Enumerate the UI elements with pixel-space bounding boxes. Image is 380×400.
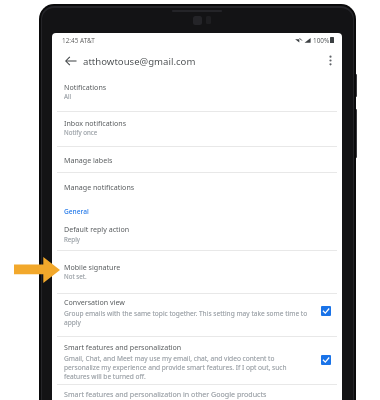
button[interactable] — [52, 327, 342, 369]
button[interactable] — [52, 180, 342, 205]
staticText: atthowtouse@gmail.com — [83, 55, 196, 68]
staticText: Smart features and personalization — [64, 342, 330, 352]
staticText: Manage labels — [64, 155, 330, 165]
staticText: Notifications — [64, 82, 330, 92]
button[interactable] — [52, 206, 342, 232]
button[interactable] — [52, 253, 342, 283]
staticText: Conversation view — [64, 297, 330, 307]
staticText: Mobile signature — [64, 262, 330, 272]
button[interactable] — [52, 284, 342, 326]
staticText: All — [64, 92, 330, 100]
button[interactable]: atthowtouse@gmail.com — [83, 50, 263, 72]
button[interactable]: Back — [62, 52, 80, 70]
staticText: Manage notifications — [64, 182, 330, 192]
staticText: 12:45 AT&T — [62, 36, 95, 45]
staticText: Default reply action — [64, 224, 330, 234]
staticText: Notify once — [64, 128, 330, 136]
staticText: Smart features and personalization in ot… — [64, 389, 330, 399]
button[interactable] — [52, 145, 342, 179]
staticText: Not set. — [64, 272, 330, 280]
staticText: Inbox notifications — [64, 118, 330, 128]
staticText: 100% — [313, 36, 330, 45]
staticText: Reply — [64, 235, 330, 243]
button[interactable] — [52, 370, 342, 400]
staticText: Gmail, Chat, and Meet may use my email, … — [64, 354, 324, 381]
button[interactable]: More options — [321, 51, 339, 69]
button[interactable]: Conversation view — [321, 306, 331, 316]
button[interactable]: Smart features and personalization — [321, 355, 331, 365]
staticText: General — [64, 207, 330, 216]
button[interactable] — [52, 111, 342, 144]
staticText: Group emails with the same topic togethe… — [64, 309, 324, 327]
